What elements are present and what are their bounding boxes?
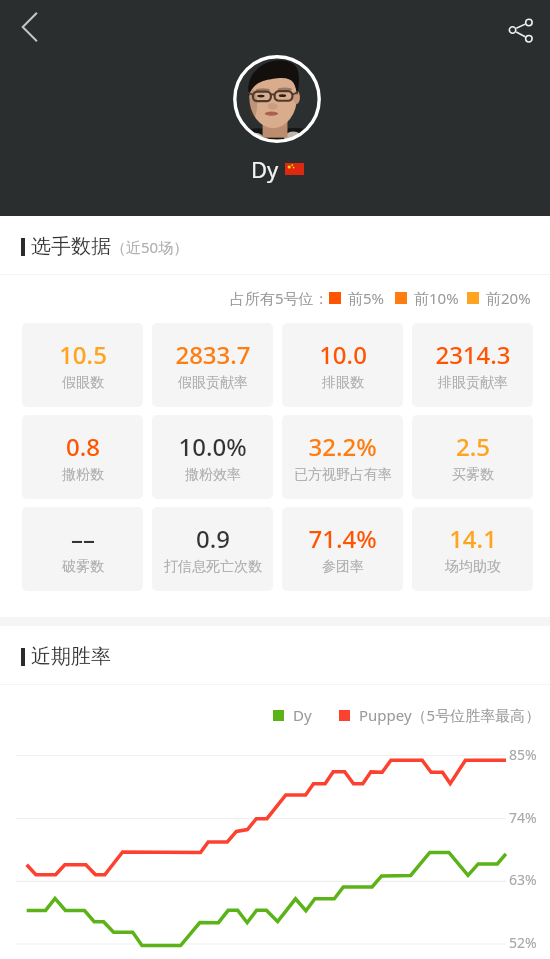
staticText: Puppey（5号位胜率最高）	[359, 705, 541, 725]
button[interactable]: 71.4%	[282, 507, 403, 591]
button[interactable]: 2833.7	[152, 323, 273, 407]
button[interactable]: 14.1	[412, 507, 533, 591]
staticText: 打信息死亡次数	[164, 558, 262, 576]
staticText: 前5%	[348, 288, 385, 308]
staticText: 破雾数	[62, 558, 104, 576]
staticText: 85%	[509, 745, 537, 764]
staticText: ––	[71, 522, 95, 555]
staticText: 选手数据	[31, 234, 111, 259]
button[interactable]: Back	[6, 4, 52, 50]
staticText: 已方视野占有率	[294, 466, 392, 484]
staticText: 假眼贡献率	[178, 374, 248, 392]
staticText: Dy	[251, 154, 279, 184]
staticText: 前20%	[486, 288, 531, 308]
staticText: 74%	[509, 808, 537, 827]
staticText: 71.4%	[308, 522, 377, 555]
staticText: 10.0%	[178, 430, 247, 463]
staticText: 前10%	[414, 288, 459, 308]
staticText: 10.5	[59, 338, 107, 371]
button[interactable]: 32.2%	[282, 415, 403, 499]
staticText: 场均助攻	[445, 558, 501, 576]
button[interactable]: 10.5	[22, 323, 143, 407]
staticText: 2.5	[456, 430, 490, 463]
button[interactable]: ––	[22, 507, 143, 591]
staticText: 10.0	[319, 338, 367, 371]
staticText: 撒粉数	[62, 466, 104, 484]
staticText: 买雾数	[452, 466, 494, 484]
staticText: 52%	[509, 933, 537, 952]
staticText: （近50场）	[111, 237, 189, 257]
staticText: 14.1	[449, 522, 497, 555]
staticText: 2833.7	[175, 338, 251, 371]
staticText: 0.8	[66, 430, 100, 463]
staticText: 撒粉效率	[185, 466, 241, 484]
staticText: 0.9	[196, 522, 230, 555]
staticText: 2314.3	[435, 338, 511, 371]
staticText: 排眼贡献率	[438, 374, 508, 392]
button[interactable]: 10.0%	[152, 415, 273, 499]
staticText: Dy	[293, 705, 312, 725]
staticText: 32.2%	[308, 430, 377, 463]
button[interactable]: 10.0	[282, 323, 403, 407]
button[interactable]: 2314.3	[412, 323, 533, 407]
staticText: 近期胜率	[31, 644, 111, 669]
staticText: 占所有5号位：	[230, 288, 329, 308]
button[interactable]: 0.9	[152, 507, 273, 591]
staticText: 参团率	[322, 558, 364, 576]
staticText: 假眼数	[62, 374, 104, 392]
staticText: 63%	[509, 870, 537, 889]
button[interactable]: Share	[497, 7, 543, 53]
button[interactable]: 0.8	[22, 415, 143, 499]
button[interactable]: 2.5	[412, 415, 533, 499]
staticText: 排眼数	[322, 374, 364, 392]
